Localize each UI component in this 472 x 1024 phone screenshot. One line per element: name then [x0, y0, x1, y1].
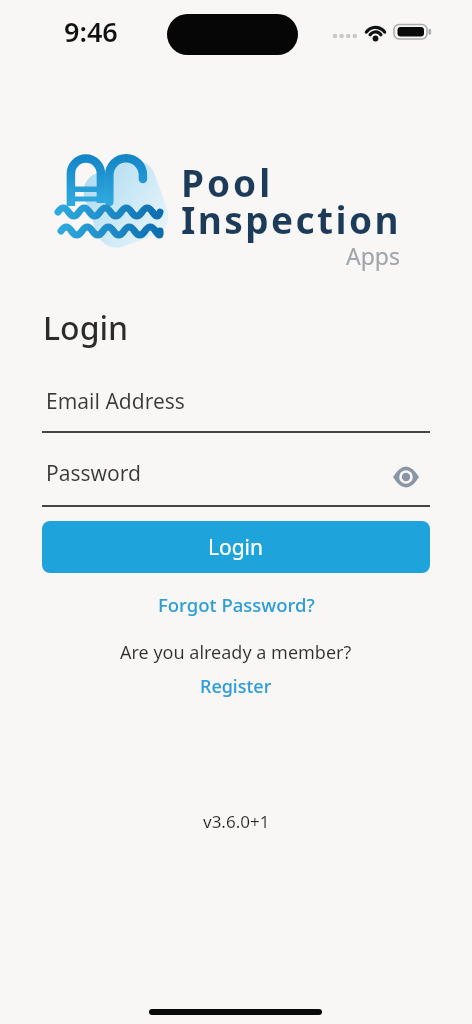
- staticText: Password: [46, 459, 141, 488]
- button[interactable]: Email Address: [42, 380, 430, 433]
- staticText: Login: [208, 533, 264, 562]
- button[interactable]: [393, 467, 419, 487]
- staticText: 9:46: [64, 13, 118, 50]
- staticText: Pool: [181, 157, 274, 207]
- button[interactable]: Register: [200, 674, 272, 699]
- button[interactable]: Password: [42, 452, 430, 507]
- staticText: Email Address: [46, 387, 185, 416]
- staticText: Login: [43, 306, 129, 350]
- button[interactable]: Login: [42, 521, 430, 573]
- staticText: Apps: [346, 240, 401, 271]
- button[interactable]: Forgot Password?: [158, 592, 315, 617]
- staticText: v3.6.0+1: [203, 810, 270, 833]
- staticText: Inspection: [181, 194, 401, 244]
- staticText: Are you already a member?: [120, 640, 352, 665]
